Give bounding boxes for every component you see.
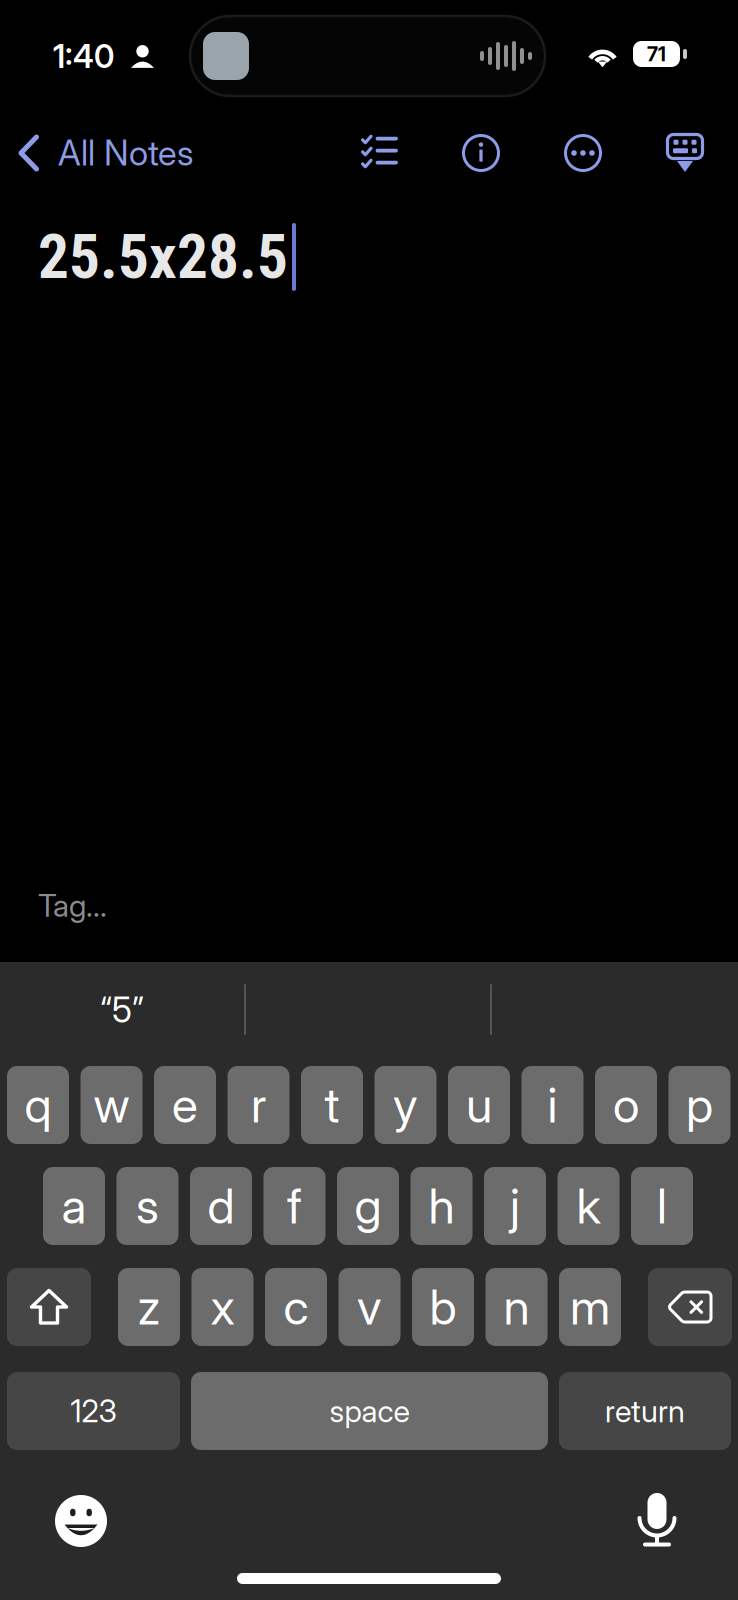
button[interactable]: g: [337, 1167, 399, 1245]
button[interactable]: z: [118, 1268, 180, 1346]
button[interactable]: More options: [545, 116, 621, 190]
button[interactable]: “5”: [0, 962, 244, 1058]
staticText: t: [324, 1076, 339, 1134]
button[interactable]: Emoji keyboard: [55, 1495, 107, 1547]
staticText: i: [547, 1076, 557, 1134]
staticText: o: [613, 1076, 639, 1134]
staticText: m: [570, 1278, 610, 1336]
button[interactable]: Info: [443, 116, 519, 190]
button[interactable]: i: [521, 1066, 583, 1144]
button[interactable]: y: [374, 1066, 436, 1144]
button[interactable]: All Notes: [0, 116, 209, 190]
staticText: y: [393, 1076, 418, 1134]
button[interactable]: t: [301, 1066, 363, 1144]
staticText: e: [172, 1076, 198, 1134]
staticText: All Notes: [58, 132, 193, 174]
staticText: r: [251, 1076, 266, 1134]
staticText: b: [429, 1278, 456, 1336]
staticText: k: [576, 1177, 600, 1235]
staticText: q: [24, 1076, 51, 1134]
button[interactable]: space: [191, 1372, 548, 1450]
button[interactable]: w: [80, 1066, 142, 1144]
staticText: h: [428, 1177, 454, 1235]
button[interactable]: n: [485, 1268, 547, 1346]
button[interactable]: x: [191, 1268, 253, 1346]
button[interactable]: Shift: [7, 1268, 91, 1346]
staticText: a: [61, 1177, 86, 1235]
button[interactable]: m: [559, 1268, 621, 1346]
button[interactable]: j: [484, 1167, 546, 1245]
staticText: w: [93, 1076, 129, 1134]
staticText: v: [357, 1278, 382, 1336]
button[interactable]: a: [43, 1167, 105, 1245]
staticText: space: [329, 1392, 409, 1429]
button[interactable]: Checklist: [341, 113, 417, 187]
button[interactable]: return: [559, 1372, 731, 1450]
button[interactable]: k: [557, 1167, 619, 1245]
button[interactable]: f: [263, 1167, 325, 1245]
staticText: s: [136, 1177, 159, 1235]
staticText: x: [210, 1278, 234, 1336]
button[interactable]: Hide keyboard: [647, 116, 723, 190]
button[interactable]: c: [265, 1268, 327, 1346]
staticText: return: [605, 1392, 685, 1429]
staticText: z: [137, 1278, 160, 1336]
button[interactable]: p: [668, 1066, 730, 1144]
staticText: 123: [70, 1392, 116, 1429]
button[interactable]: 123: [7, 1372, 180, 1450]
staticText: f: [287, 1177, 302, 1235]
button[interactable]: Delete: [648, 1268, 732, 1346]
staticText: p: [686, 1076, 713, 1134]
button[interactable]: v: [338, 1268, 400, 1346]
button[interactable]: o: [595, 1066, 657, 1144]
staticText: g: [354, 1177, 381, 1235]
button[interactable]: s: [116, 1167, 178, 1245]
button[interactable]: e: [154, 1066, 216, 1144]
button[interactable]: h: [410, 1167, 472, 1245]
staticText: 25.5x28.5: [38, 221, 288, 293]
staticText: 1:40: [53, 37, 114, 76]
button[interactable]: d: [190, 1167, 252, 1245]
button[interactable]: u: [448, 1066, 510, 1144]
staticText: c: [283, 1278, 308, 1336]
staticText: j: [510, 1177, 520, 1235]
button[interactable]: q: [7, 1066, 69, 1144]
staticText: Tag...: [38, 887, 107, 924]
button[interactable]: l: [631, 1167, 693, 1245]
button[interactable]: Dictate: [637, 1493, 677, 1549]
staticText: u: [466, 1076, 492, 1134]
button[interactable]: r: [227, 1066, 289, 1144]
staticText: “5”: [100, 989, 144, 1031]
staticText: 71: [647, 42, 666, 66]
button[interactable]: b: [412, 1268, 474, 1346]
staticText: n: [503, 1278, 529, 1336]
staticText: d: [207, 1177, 234, 1235]
staticText: l: [657, 1177, 667, 1235]
